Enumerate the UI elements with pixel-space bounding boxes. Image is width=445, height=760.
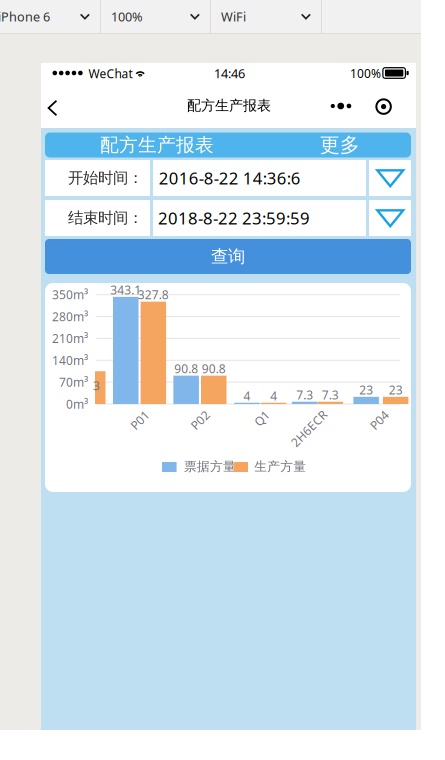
staticText: 开始时间： bbox=[68, 168, 143, 188]
staticText: 更多 bbox=[320, 132, 360, 158]
staticText: 2H6ECR bbox=[274, 407, 319, 423]
staticText: 2018-8-22 23:59:59 bbox=[158, 207, 310, 229]
staticText: 350m³ bbox=[52, 286, 88, 303]
staticText: 327.8 bbox=[138, 286, 169, 303]
staticText: 票据方量 bbox=[184, 458, 236, 474]
staticText: P02 bbox=[181, 407, 202, 423]
staticText: 23 bbox=[359, 382, 373, 398]
staticText: 4 bbox=[270, 388, 277, 404]
staticText: WeChat bbox=[88, 65, 132, 82]
staticText: 210m³ bbox=[52, 330, 88, 346]
staticText: 140m³ bbox=[52, 352, 88, 368]
staticText: 343.1 bbox=[110, 282, 141, 298]
staticText: 100% bbox=[350, 65, 381, 81]
staticText: P04 bbox=[360, 407, 381, 423]
button[interactable]: Pick end time bbox=[376, 209, 404, 227]
staticText: 100% bbox=[111, 8, 143, 25]
staticText: 90.8 bbox=[202, 360, 226, 377]
staticText: 90.8 bbox=[174, 360, 198, 377]
staticText: Q1 bbox=[246, 407, 262, 423]
staticText: 14:46 bbox=[214, 65, 245, 82]
staticText: P01 bbox=[120, 407, 141, 423]
staticText: 2016-8-22 14:36:6 bbox=[159, 167, 301, 189]
staticText: 23 bbox=[389, 382, 403, 398]
button[interactable]: WiFi bbox=[211, 0, 321, 33]
button[interactable]: Close bbox=[372, 95, 396, 119]
button[interactable]: 100% bbox=[101, 0, 210, 33]
staticText: 4 bbox=[244, 388, 251, 404]
staticText: 配方生产报表 bbox=[187, 97, 271, 114]
staticText: 结束时间： bbox=[68, 208, 143, 228]
button[interactable]: 更多 bbox=[320, 137, 370, 153]
staticText: 7.3 bbox=[296, 386, 313, 403]
staticText: 生产方量 bbox=[254, 458, 306, 474]
button[interactable]: iPhone 6 bbox=[0, 0, 100, 33]
button[interactable]: Back bbox=[43, 90, 69, 126]
staticText: 查询 bbox=[211, 246, 245, 267]
staticText: 0m³ bbox=[66, 396, 88, 412]
staticText: iPhone 6 bbox=[0, 8, 50, 25]
staticText: 3 bbox=[93, 377, 100, 394]
staticText: 7.3 bbox=[322, 386, 339, 403]
button[interactable]: 查询 bbox=[45, 239, 411, 274]
staticText: 70m³ bbox=[59, 374, 88, 390]
button[interactable]: Pick start time bbox=[376, 169, 404, 187]
staticText: 280m³ bbox=[52, 308, 88, 325]
button[interactable]: More bbox=[326, 94, 356, 118]
staticText: 配方生产报表 bbox=[100, 133, 214, 157]
staticText: WiFi bbox=[221, 8, 246, 25]
